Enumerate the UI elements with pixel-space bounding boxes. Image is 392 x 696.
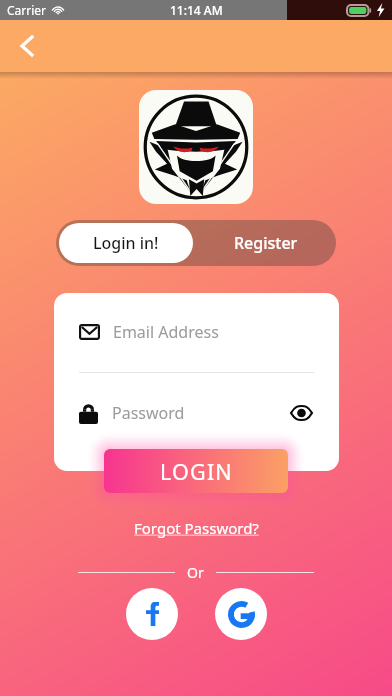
button[interactable]: Login in! [59,223,193,263]
staticText: Carrier [7,2,47,18]
button[interactable]: Password [79,385,314,441]
button[interactable]: Show password [288,400,314,426]
staticText: LOGIN [160,457,233,486]
button[interactable]: Register [196,220,336,266]
staticText: Register [234,232,298,254]
staticText: Forgot Password? [134,518,259,538]
button[interactable]: Email Address [79,304,314,360]
staticText: Login in! [93,232,159,254]
staticText: Password [112,402,185,424]
staticText: Or [187,563,204,582]
staticText: 11:14 AM [170,2,223,18]
button[interactable]: Back [6,25,48,67]
button[interactable]: LOGIN [104,449,288,493]
button[interactable]: Forgot Password? [124,514,269,542]
button[interactable]: Sign in with Facebook [126,588,178,640]
button[interactable]: Sign in with Google [215,588,267,640]
staticText: Email Address [113,321,219,343]
